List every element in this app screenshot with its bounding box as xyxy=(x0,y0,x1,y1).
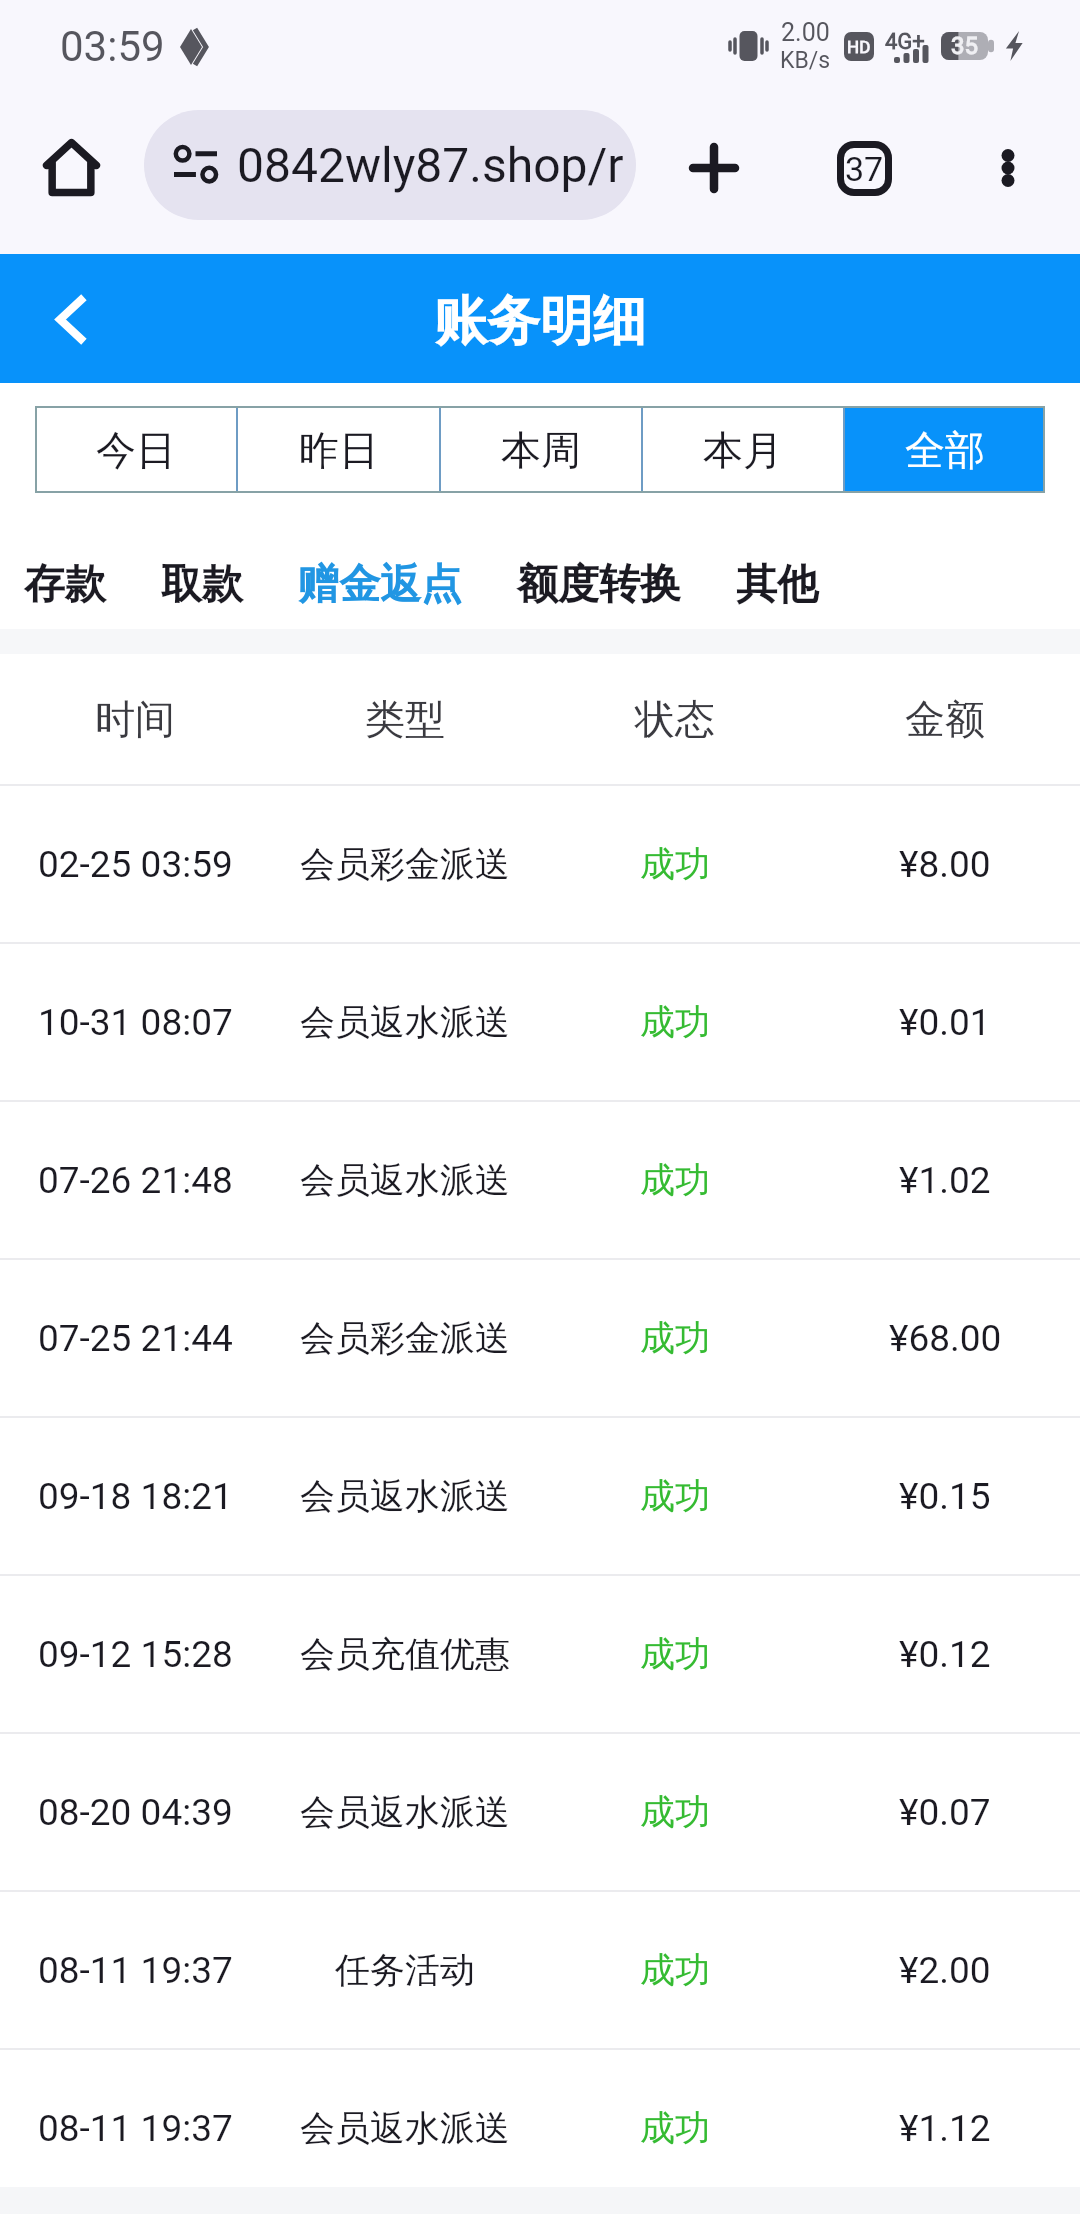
staticText: 全部 xyxy=(905,425,985,475)
staticText: 0842wly87.shop/r xyxy=(237,137,624,193)
button[interactable]: 全部 xyxy=(845,406,1045,493)
staticText: 时间 xyxy=(95,694,175,744)
staticText: 会员返水派送 xyxy=(300,1000,510,1044)
button[interactable]: New tab xyxy=(662,116,766,220)
staticText: ¥0.07 xyxy=(899,1791,991,1834)
staticText: 本周 xyxy=(501,425,581,475)
staticText: 08-11 19:37 xyxy=(38,1949,233,1992)
staticText: 07-26 21:48 xyxy=(38,1159,233,1202)
staticText: 成功 xyxy=(640,1948,710,1992)
staticText: 会员返水派送 xyxy=(300,1158,510,1202)
staticText: ¥0.15 xyxy=(899,1475,991,1518)
button[interactable]: 额度转换 xyxy=(517,559,681,611)
button[interactable]: 赠金返点 xyxy=(298,559,462,611)
button[interactable]: 08-11 19:37 xyxy=(0,1892,1080,2048)
staticText: 存款 xyxy=(24,559,106,611)
staticText: 账务明细 xyxy=(434,288,646,355)
staticText: 会员彩金派送 xyxy=(300,1316,510,1360)
staticText: ¥68.00 xyxy=(889,1317,1002,1360)
staticText: 会员充值优惠 xyxy=(300,1632,510,1676)
button[interactable]: 昨日 xyxy=(238,406,439,493)
staticText: ¥0.01 xyxy=(899,1001,991,1044)
button[interactable]: 08-20 04:39 xyxy=(0,1734,1080,1890)
button[interactable]: Back xyxy=(22,271,118,367)
staticText: 会员返水派送 xyxy=(300,2106,510,2150)
staticText: 2.00 xyxy=(781,18,830,47)
button[interactable]: 存款 xyxy=(24,559,106,611)
staticText: 会员彩金派送 xyxy=(300,842,510,886)
button[interactable]: 09-12 15:28 xyxy=(0,1576,1080,1732)
staticText: 09-18 18:21 xyxy=(38,1475,233,1518)
staticText: 取款 xyxy=(161,559,243,611)
button[interactable]: 07-25 21:44 xyxy=(0,1260,1080,1416)
staticText: 03:59 xyxy=(60,22,165,71)
staticText: 今日 xyxy=(96,425,176,475)
staticText: 成功 xyxy=(640,1632,710,1676)
button[interactable]: 08-11 19:37 xyxy=(0,2050,1080,2206)
staticText: 成功 xyxy=(640,1316,710,1360)
button[interactable]: 取款 xyxy=(161,559,243,611)
staticText: 37 xyxy=(845,149,884,189)
staticText: 成功 xyxy=(640,1790,710,1834)
button[interactable]: Address bar: 0842wly87.shop xyxy=(144,110,636,220)
button[interactable]: 其他 xyxy=(736,559,818,611)
button[interactable]: 02-25 03:59 xyxy=(0,786,1080,942)
staticText: 赠金返点 xyxy=(298,559,462,611)
button[interactable]: 今日 xyxy=(35,406,236,493)
staticText: ¥0.12 xyxy=(899,1633,991,1676)
staticText: ¥8.00 xyxy=(899,843,991,886)
staticText: 08-11 19:37 xyxy=(38,2107,233,2150)
staticText: 07-25 21:44 xyxy=(38,1317,233,1360)
staticText: 4G+ xyxy=(885,29,925,55)
button[interactable]: Tabs: 37 xyxy=(812,116,916,220)
button[interactable]: 07-26 21:48 xyxy=(0,1102,1080,1258)
staticText: ¥1.02 xyxy=(899,1159,991,1202)
staticText: 08-20 04:39 xyxy=(38,1791,233,1834)
button[interactable]: 本周 xyxy=(441,406,641,493)
staticText: 成功 xyxy=(640,842,710,886)
staticText: 成功 xyxy=(640,1158,710,1202)
staticText: 09-12 15:28 xyxy=(38,1633,233,1676)
button[interactable]: 09-18 18:21 xyxy=(0,1418,1080,1574)
staticText: 成功 xyxy=(640,1474,710,1518)
staticText: HD xyxy=(847,37,871,57)
staticText: 其他 xyxy=(736,559,818,611)
staticText: 类型 xyxy=(365,694,445,744)
staticText: 额度转换 xyxy=(517,559,681,611)
button[interactable]: Home xyxy=(19,115,124,220)
button[interactable]: 本月 xyxy=(643,406,843,493)
staticText: ¥2.00 xyxy=(899,1949,991,1992)
staticText: ¥1.12 xyxy=(899,2107,991,2150)
staticText: 10-31 08:07 xyxy=(38,1001,233,1044)
staticText: 昨日 xyxy=(299,425,379,475)
staticText: KB/s xyxy=(780,47,831,74)
staticText: 成功 xyxy=(640,2106,710,2150)
staticText: 状态 xyxy=(635,694,715,744)
staticText: 本月 xyxy=(703,425,783,475)
staticText: 35 xyxy=(951,32,978,60)
staticText: 会员返水派送 xyxy=(300,1790,510,1834)
staticText: 02-25 03:59 xyxy=(38,843,233,886)
button[interactable]: 10-31 08:07 xyxy=(0,944,1080,1100)
staticText: 成功 xyxy=(640,1000,710,1044)
staticText: 金额 xyxy=(905,694,985,744)
button[interactable]: More options xyxy=(956,116,1060,220)
staticText: 任务活动 xyxy=(335,1948,475,1992)
staticText: 会员返水派送 xyxy=(300,1474,510,1518)
